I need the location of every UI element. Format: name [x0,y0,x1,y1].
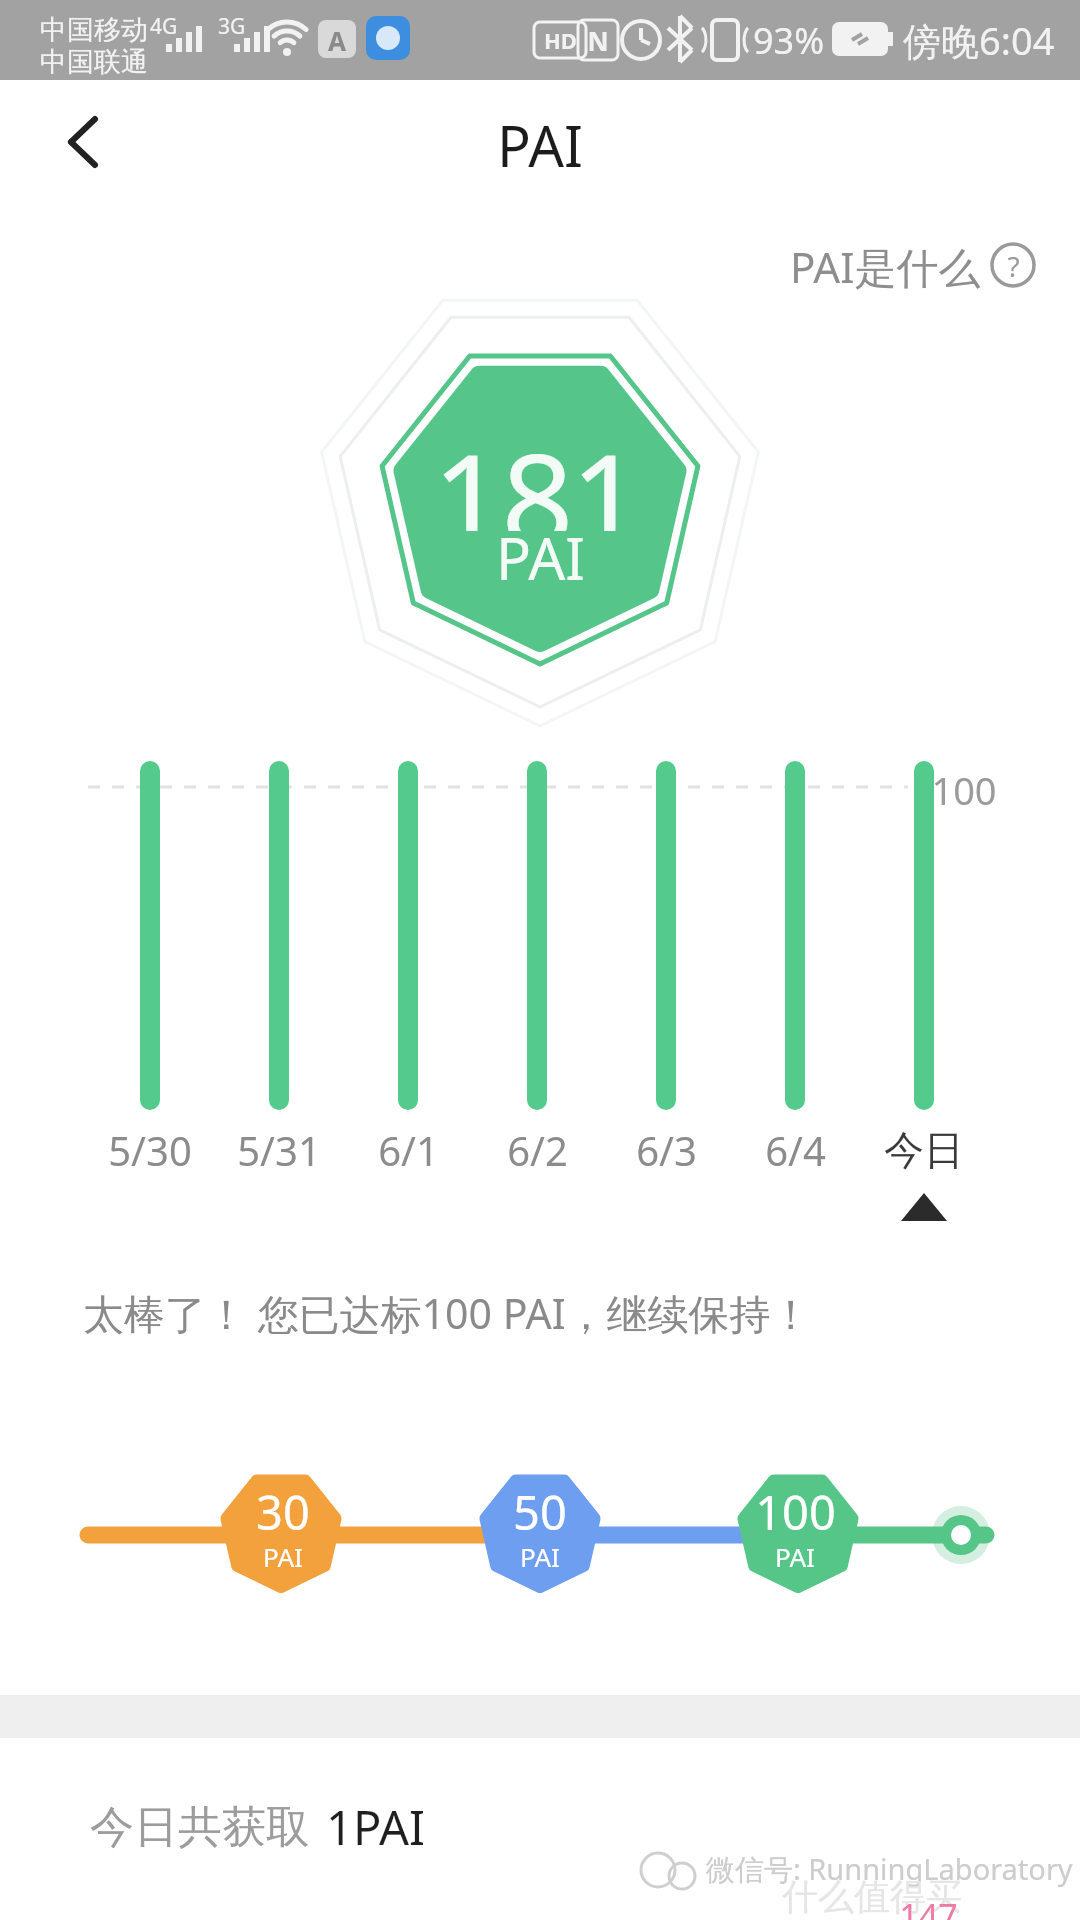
staticText: 6/3 [636,1123,697,1177]
staticText: 今日共获取 [90,1800,310,1855]
staticText: 太棒了！ 您已达标100 PAI，继续保持！ [83,1285,812,1341]
staticText: PAI [520,1539,560,1574]
staticText: 6/4 [765,1123,826,1177]
staticText: A [328,23,346,58]
staticText: PAI [775,1539,815,1574]
staticText: 50 [513,1480,567,1544]
staticText: PAI [263,1539,303,1574]
staticText: 100 [755,1480,836,1544]
staticText: 181 [432,411,640,531]
staticText: 中国联通 [40,45,148,79]
staticText: 5/30 [108,1123,192,1177]
staticText: N [587,23,609,58]
staticText: 30 [256,1480,310,1544]
staticText: 微信号: RunningLaboratory [706,1849,1073,1889]
staticText: 93% [753,16,825,65]
staticText: ? [1007,247,1020,285]
staticText: 今日 [884,1125,964,1175]
staticText: 什么值得买 [782,1874,962,1919]
staticText: 100 [931,764,997,816]
staticText: PAI [497,107,583,183]
staticText: 5/31 [237,1123,321,1177]
staticText: 6/1 [378,1123,439,1177]
button[interactable] [40,110,130,180]
staticText: 中国移动 [40,13,148,47]
staticText: PAI [496,518,585,597]
staticText: 傍晚6:04 [903,14,1055,66]
staticText: 147 [899,1893,958,1920]
staticText: PAI是什么 [790,238,981,292]
button[interactable]: 今日共获取 [90,1790,425,1864]
staticText: 1PAI [326,1795,425,1859]
staticText: 3G [218,12,246,41]
staticText: 6/2 [507,1123,568,1177]
staticText: HD [544,25,577,55]
staticText: 4G [150,12,178,41]
button[interactable]: PAI是什么 [790,238,1037,292]
